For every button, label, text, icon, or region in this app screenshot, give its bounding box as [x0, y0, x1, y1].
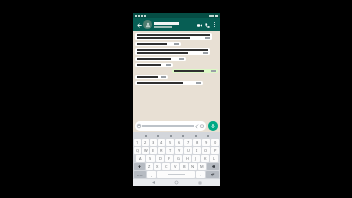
- button[interactable]: Z: [146, 163, 153, 170]
- button[interactable]: Period: [196, 171, 205, 178]
- button[interactable]: Send voice message: [208, 121, 218, 131]
- button[interactable]: F: [165, 155, 173, 162]
- button[interactable]: Back: [135, 21, 143, 29]
- button[interactable]: Keyboard tool: [181, 134, 184, 137]
- button[interactable]: I: [193, 147, 201, 154]
- staticText: .: [200, 172, 202, 177]
- button[interactable]: [135, 81, 203, 85]
- staticText: J: [195, 156, 197, 161]
- staticText: F: [168, 156, 171, 161]
- staticText: K: [204, 156, 207, 161]
- button[interactable]: Backspace: [207, 163, 219, 170]
- staticText: A: [139, 156, 142, 161]
- button[interactable]: A: [136, 155, 145, 162]
- staticText: B: [183, 164, 186, 169]
- staticText: D: [159, 156, 162, 161]
- button[interactable]: W: [142, 147, 149, 154]
- button[interactable]: Keyboard tool: [206, 134, 209, 137]
- button[interactable]: Symbols: [134, 171, 146, 178]
- button[interactable]: G: [174, 155, 182, 162]
- staticText: Z: [148, 164, 151, 169]
- button[interactable]: Profile photo: [143, 20, 152, 29]
- button[interactable]: [135, 42, 181, 46]
- staticText: 1: [136, 140, 139, 145]
- button[interactable]: J: [192, 155, 200, 162]
- button[interactable]: Recents: [197, 180, 202, 185]
- button[interactable]: [154, 22, 195, 28]
- button[interactable]: [135, 63, 173, 67]
- button[interactable]: V: [171, 163, 179, 170]
- staticText: 4: [160, 140, 163, 145]
- button[interactable]: [135, 33, 212, 40]
- button[interactable]: 8: [193, 139, 201, 146]
- staticText: T: [169, 148, 172, 153]
- button[interactable]: 4: [158, 139, 165, 146]
- button[interactable]: 0: [211, 139, 219, 146]
- staticText: P: [214, 148, 217, 153]
- button[interactable]: Video call: [195, 21, 203, 29]
- button[interactable]: T: [166, 147, 174, 154]
- button[interactable]: 2: [142, 139, 149, 146]
- button[interactable]: Enter: [206, 171, 219, 178]
- button[interactable]: C: [162, 163, 170, 170]
- staticText: 0: [214, 140, 217, 145]
- staticText: V: [174, 164, 177, 169]
- button[interactable]: D: [156, 155, 164, 162]
- button[interactable]: 9: [202, 139, 210, 146]
- button[interactable]: Keyboard tool: [144, 134, 147, 137]
- staticText: M: [200, 164, 204, 169]
- button[interactable]: More options: [211, 21, 218, 28]
- staticText: H: [186, 156, 189, 161]
- staticText: 5: [169, 140, 172, 145]
- staticText: 2: [144, 140, 147, 145]
- button[interactable]: [135, 121, 206, 131]
- button[interactable]: H: [183, 155, 191, 162]
- button[interactable]: M: [198, 163, 206, 170]
- button[interactable]: [135, 75, 168, 79]
- staticText: I: [196, 148, 198, 153]
- button[interactable]: 3: [150, 139, 157, 146]
- staticText: X: [156, 164, 159, 169]
- button[interactable]: N: [189, 163, 197, 170]
- button[interactable]: 6: [175, 139, 183, 146]
- staticText: 7: [187, 140, 190, 145]
- button[interactable]: Keyboard tool: [156, 134, 159, 137]
- button[interactable]: R: [158, 147, 165, 154]
- staticText: Y: [178, 148, 181, 153]
- button[interactable]: Keyboard tool: [194, 134, 197, 137]
- button[interactable]: [135, 57, 186, 61]
- button[interactable]: Voice call: [203, 21, 211, 29]
- staticText: N: [191, 164, 195, 169]
- staticText: 6: [178, 140, 181, 145]
- button[interactable]: P: [211, 147, 219, 154]
- staticText: W: [144, 148, 148, 153]
- staticText: 3: [152, 140, 155, 145]
- button[interactable]: K: [201, 155, 209, 162]
- button[interactable]: [172, 69, 218, 73]
- staticText: U: [187, 148, 190, 153]
- button[interactable]: 5: [166, 139, 174, 146]
- button[interactable]: Y: [175, 147, 183, 154]
- staticText: C: [165, 164, 168, 169]
- button[interactable]: Comma: [147, 171, 156, 178]
- button[interactable]: X: [154, 163, 161, 170]
- button[interactable]: E: [150, 147, 157, 154]
- button[interactable]: Keyboard tool: [169, 134, 172, 137]
- staticText: 9: [205, 140, 208, 145]
- button[interactable]: L: [210, 155, 218, 162]
- button[interactable]: Shift: [134, 163, 145, 170]
- button[interactable]: Space: [157, 171, 195, 178]
- button[interactable]: Q: [134, 147, 141, 154]
- staticText: Q: [136, 148, 140, 153]
- button[interactable]: 7: [184, 139, 192, 146]
- button[interactable]: U: [184, 147, 192, 154]
- button[interactable]: Back: [151, 180, 156, 185]
- button[interactable]: 1: [134, 139, 141, 146]
- staticText: 8: [196, 140, 199, 145]
- button[interactable]: Home: [174, 180, 179, 185]
- button[interactable]: B: [180, 163, 188, 170]
- button[interactable]: O: [202, 147, 210, 154]
- button[interactable]: S: [146, 155, 155, 162]
- button[interactable]: [135, 48, 210, 55]
- staticText: G: [177, 156, 180, 161]
